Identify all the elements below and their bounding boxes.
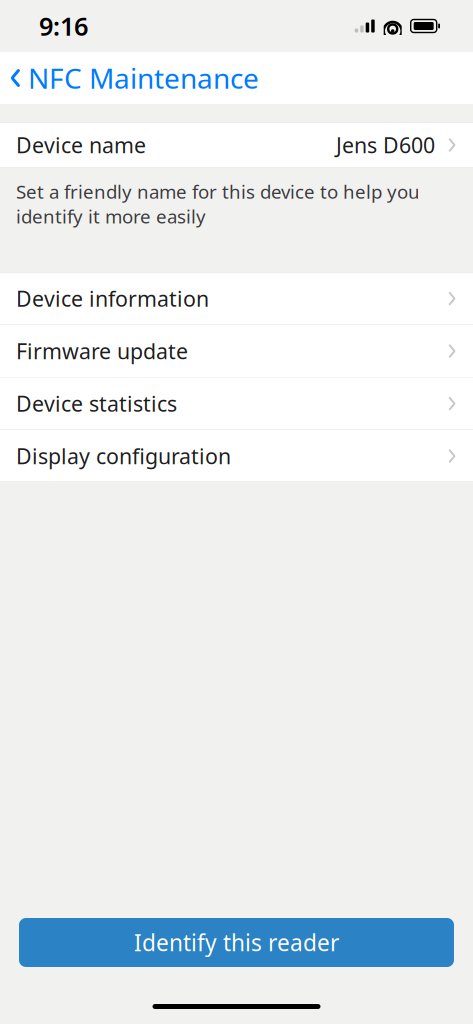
- button[interactable]: Device statistics: [0, 378, 473, 430]
- staticText: NFC Maintenance: [28, 59, 259, 97]
- staticText: Display configuration: [16, 442, 231, 470]
- staticText: Firmware update: [16, 337, 188, 365]
- staticText: Set a friendly name for this device to h…: [16, 179, 420, 229]
- button[interactable]: Device name: [0, 122, 473, 168]
- button[interactable]: Device information: [0, 273, 473, 325]
- button[interactable]: Display configuration: [0, 430, 473, 482]
- button[interactable]: Identify this reader: [19, 918, 454, 967]
- staticText: Device name: [16, 131, 146, 159]
- button[interactable]: NFC Maintenance: [0, 51, 259, 105]
- staticText: Identify this reader: [134, 927, 339, 957]
- staticText: Device statistics: [16, 389, 177, 418]
- staticText: Device information: [16, 284, 209, 313]
- button[interactable]: Firmware update: [0, 325, 473, 377]
- staticText: Jens D600: [336, 131, 435, 159]
- staticText: 9:16: [39, 9, 88, 43]
